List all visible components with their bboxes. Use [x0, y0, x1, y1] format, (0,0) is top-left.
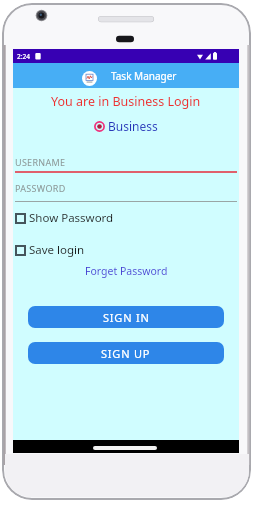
- button[interactable]: SIGN IN: [28, 306, 224, 328]
- button[interactable]: Save login: [15, 242, 85, 258]
- staticText: Save login: [29, 242, 85, 258]
- staticText: Task Manager: [111, 69, 177, 83]
- staticText: Forget Password: [85, 264, 168, 278]
- button[interactable]: Show Password: [15, 210, 114, 226]
- button[interactable]: Forget Password: [85, 264, 168, 278]
- staticText: 2:24: [17, 52, 30, 61]
- staticText: You are in Business Login: [51, 93, 201, 110]
- staticText: USERNAME: [15, 156, 66, 168]
- staticText: SIGN UP: [101, 346, 151, 361]
- button[interactable]: SIGN UP: [28, 342, 224, 364]
- button[interactable]: Business: [94, 118, 158, 134]
- staticText: Business: [108, 118, 158, 134]
- staticText: Show Password: [29, 210, 114, 226]
- staticText: PASSWORD: [15, 182, 66, 194]
- staticText: SIGN IN: [103, 310, 150, 325]
